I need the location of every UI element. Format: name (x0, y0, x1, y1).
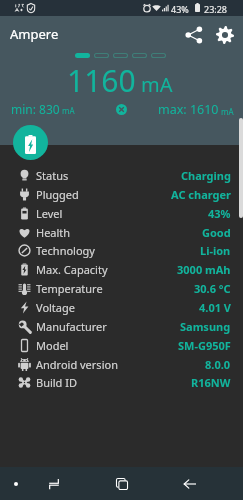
staticText: 3000 mAh (177, 262, 231, 277)
staticText: Temperature (36, 281, 103, 296)
staticText: 23:28 (204, 3, 228, 15)
button[interactable]: Technology (0, 241, 243, 260)
button[interactable]: Manufacturer (0, 317, 243, 336)
staticText: Charging (181, 168, 231, 183)
staticText: Level (36, 206, 63, 221)
button[interactable]: Page 5 (151, 53, 166, 58)
staticText: 30.6 °C (194, 281, 231, 296)
staticText: Android version (36, 357, 118, 372)
button[interactable]: Back (170, 467, 210, 500)
staticText: mA (219, 106, 234, 117)
button[interactable]: Level (0, 204, 243, 223)
button[interactable]: Status (0, 166, 243, 185)
button[interactable]: Recent apps (34, 467, 74, 500)
staticText: Max. Capacity (36, 262, 108, 277)
staticText: R16NW (191, 375, 231, 390)
staticText: min: 830 (11, 101, 60, 117)
button[interactable]: Menu (7, 467, 24, 500)
staticText: Build ID (36, 375, 78, 390)
button[interactable]: Build ID (0, 373, 243, 392)
staticText: 8.0.0 (205, 357, 231, 372)
button[interactable]: Model (0, 336, 243, 355)
button[interactable]: Page 2 (94, 53, 109, 58)
button[interactable]: Page 1 (75, 53, 90, 58)
staticText: Li-ion (200, 243, 231, 258)
button[interactable]: Battery (13, 125, 48, 160)
staticText: SM-G950F (178, 338, 231, 353)
staticText: Health (36, 225, 71, 240)
staticText: Technology (36, 243, 95, 258)
staticText: 4.01 V (199, 300, 231, 315)
button[interactable]: Page 4 (132, 53, 147, 58)
staticText: Manufacturer (36, 319, 107, 334)
staticText: Status (36, 168, 69, 183)
button[interactable]: Temperature (0, 279, 243, 298)
staticText: Samsung (180, 319, 231, 334)
button[interactable]: Settings (211, 21, 239, 49)
staticText: max: 1610 (158, 101, 219, 118)
staticText: Good (202, 225, 231, 240)
button[interactable]: Page 3 (113, 53, 128, 58)
button[interactable]: Android version (0, 355, 243, 374)
button[interactable]: Max. Capacity (0, 260, 243, 279)
button[interactable]: Health (0, 223, 243, 242)
staticText: mA (60, 105, 75, 116)
staticText: mA (141, 71, 173, 98)
staticText: AC charger (171, 187, 231, 202)
staticText: Plugged (36, 187, 79, 202)
staticText: 43% (171, 3, 189, 15)
staticText: 1160 (67, 60, 136, 101)
button[interactable]: Reset (113, 101, 129, 117)
staticText: Ampere (10, 25, 59, 43)
button[interactable]: Voltage (0, 298, 243, 317)
button[interactable]: Share (180, 21, 208, 49)
button[interactable]: Plugged (0, 185, 243, 204)
staticText: 43% (208, 206, 231, 221)
button[interactable]: Home (102, 467, 142, 500)
staticText: Model (36, 338, 69, 353)
staticText: Voltage (36, 300, 75, 315)
